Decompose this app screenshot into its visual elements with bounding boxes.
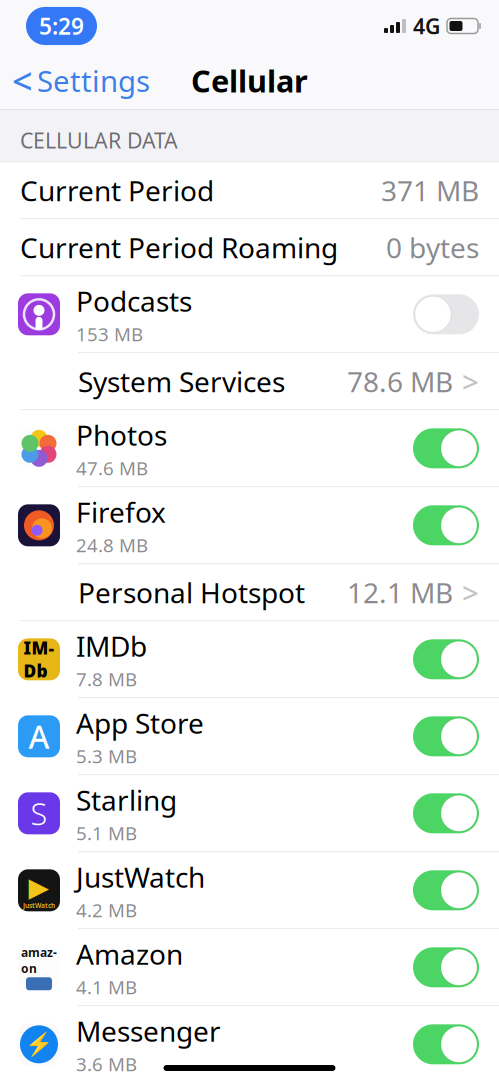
- staticText: Messenger: [76, 1012, 221, 1049]
- staticText: 24.8 MB: [76, 532, 148, 557]
- staticText: 4.2 MB: [76, 897, 137, 922]
- button[interactable]: A: [0, 698, 499, 774]
- staticText: IMDb: [76, 627, 147, 664]
- button[interactable]: ⚡: [0, 1006, 499, 1080]
- staticText: 78.6 MB: [347, 363, 453, 400]
- staticText: 12.1 MB: [347, 574, 453, 611]
- button[interactable]: System Services: [0, 353, 499, 409]
- staticText: 4.1 MB: [76, 974, 137, 999]
- staticText: A: [28, 715, 49, 758]
- button[interactable]: amazon: [0, 929, 499, 1005]
- button[interactable]: Personal Hotspot: [0, 564, 499, 620]
- button[interactable]: ▶: [0, 852, 499, 928]
- staticText: Current Period Roaming: [20, 229, 338, 266]
- staticText: 5.3 MB: [76, 743, 137, 768]
- staticText: >: [462, 362, 479, 401]
- staticText: Starling: [76, 781, 177, 818]
- button[interactable]: Podcasts: [0, 276, 499, 352]
- staticText: Personal Hotspot: [78, 574, 305, 611]
- staticText: Settings: [37, 61, 150, 100]
- staticText: 47.6 MB: [76, 455, 148, 480]
- button[interactable]: Current Period Roaming: [0, 219, 499, 275]
- staticText: CELLULAR DATA: [20, 126, 178, 154]
- staticText: Cellular: [191, 60, 308, 101]
- staticText: 153 MB: [76, 321, 143, 346]
- staticText: JustWatch: [76, 858, 205, 895]
- staticText: App Store: [76, 704, 204, 741]
- staticText: S: [30, 793, 47, 834]
- staticText: 0 bytes: [386, 229, 479, 266]
- staticText: ⚡: [25, 1031, 53, 1057]
- staticText: 4G: [413, 12, 440, 40]
- staticText: Amazon: [76, 935, 183, 972]
- staticText: ▶: [28, 872, 49, 902]
- staticText: 5:29: [39, 11, 84, 41]
- staticText: Photos: [76, 416, 167, 453]
- button[interactable]: S: [0, 775, 499, 851]
- staticText: >: [462, 573, 479, 612]
- button[interactable]: Firefox: [0, 487, 499, 563]
- staticText: Podcasts: [76, 282, 192, 319]
- staticText: Current Period: [20, 172, 214, 209]
- button[interactable]: Photos: [0, 410, 499, 486]
- staticText: <: [12, 57, 33, 104]
- staticText: IMDb: [23, 636, 54, 682]
- staticText: 5.1 MB: [76, 820, 137, 845]
- staticText: 371 MB: [381, 172, 479, 209]
- staticText: 3.6 MB: [76, 1051, 137, 1076]
- staticText: System Services: [78, 363, 285, 400]
- button[interactable]: IMDb: [0, 621, 499, 697]
- button[interactable]: <: [0, 51, 150, 110]
- staticText: JustWatch: [23, 901, 55, 910]
- staticText: Firefox: [76, 493, 166, 530]
- staticText: amazon: [21, 944, 57, 976]
- staticText: 7.8 MB: [76, 666, 137, 691]
- button[interactable]: Current Period: [0, 162, 499, 218]
